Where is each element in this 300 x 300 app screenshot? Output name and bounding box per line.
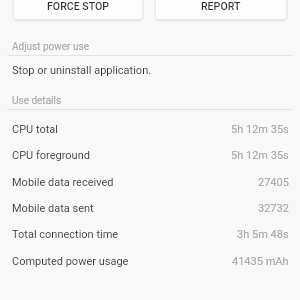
button[interactable]: CPU foreground — [0, 142, 300, 168]
button[interactable]: FORCE STOP — [13, 0, 143, 20]
staticText: REPORT — [201, 0, 241, 12]
staticText: Total connection time — [12, 228, 119, 241]
staticText: FORCE STOP — [47, 0, 110, 12]
staticText: 41435 mAh — [232, 255, 289, 268]
staticText: Computed power usage — [12, 255, 129, 268]
button[interactable]: Mobile data received — [0, 169, 300, 195]
staticText: CPU foreground — [12, 149, 90, 162]
staticText: Mobile data received — [12, 176, 114, 189]
button[interactable]: CPU total — [0, 116, 300, 142]
button[interactable]: Total connection time — [0, 221, 300, 247]
staticText: 5h 12m 35s — [231, 149, 289, 162]
staticText: CPU total — [12, 123, 58, 136]
staticText: 27405 — [258, 176, 289, 189]
button[interactable]: Computed power usage — [0, 248, 300, 274]
staticText: Stop or uninstall application. — [12, 64, 152, 77]
staticText: 5h 12m 35s — [231, 123, 289, 136]
staticText: Use details — [12, 95, 62, 107]
button[interactable]: Mobile data sent — [0, 195, 300, 221]
button[interactable]: Stop or uninstall application. — [0, 57, 300, 83]
staticText: Adjust power use — [12, 41, 89, 53]
staticText: 3h 5m 48s — [237, 228, 289, 241]
staticText: Mobile data sent — [12, 202, 94, 215]
button[interactable]: REPORT — [155, 0, 287, 20]
staticText: 32732 — [258, 202, 289, 215]
